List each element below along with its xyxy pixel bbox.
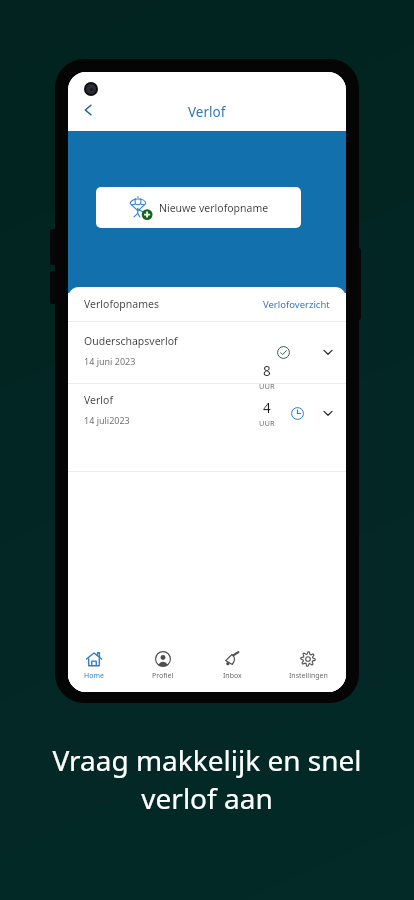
staticText: UUR	[259, 418, 275, 428]
staticText: Ouderschapsverlof	[84, 334, 178, 348]
staticText: Verlof	[84, 393, 114, 407]
staticText: Profiel	[152, 671, 174, 681]
staticText: 14 juli2023	[84, 414, 130, 426]
staticText: verlof aan	[141, 779, 273, 817]
staticText: Nieuwe verlofopname	[159, 201, 269, 215]
button[interactable]: Nieuwe verlofopname	[96, 187, 301, 228]
button[interactable]: Expand	[315, 400, 341, 426]
button[interactable]: Home	[68, 640, 124, 692]
staticText: Inbox	[223, 671, 242, 681]
button[interactable]: Back	[75, 97, 101, 123]
staticText: 14 juni 2023	[84, 355, 136, 367]
staticText: Home	[84, 671, 104, 681]
button[interactable]: Inbox	[202, 640, 262, 692]
staticText: Vraag makkelijk en snel	[52, 741, 362, 779]
button[interactable]: Verlof	[68, 391, 346, 443]
button[interactable]: Verlofoverzicht	[263, 298, 330, 311]
button[interactable]: Ouderschapsverlof	[68, 332, 346, 384]
staticText: UUR	[259, 381, 275, 391]
button[interactable]: Instellingen	[278, 640, 338, 692]
staticText: 8	[263, 362, 271, 380]
staticText: Verlof	[188, 103, 226, 121]
staticText: 4	[263, 399, 271, 417]
staticText: Verlofopnames	[84, 297, 159, 311]
staticText: Instellingen	[289, 671, 328, 681]
button[interactable]: Expand	[315, 339, 341, 365]
button[interactable]: Profiel	[133, 640, 193, 692]
staticText: Verlofoverzicht	[263, 298, 330, 311]
